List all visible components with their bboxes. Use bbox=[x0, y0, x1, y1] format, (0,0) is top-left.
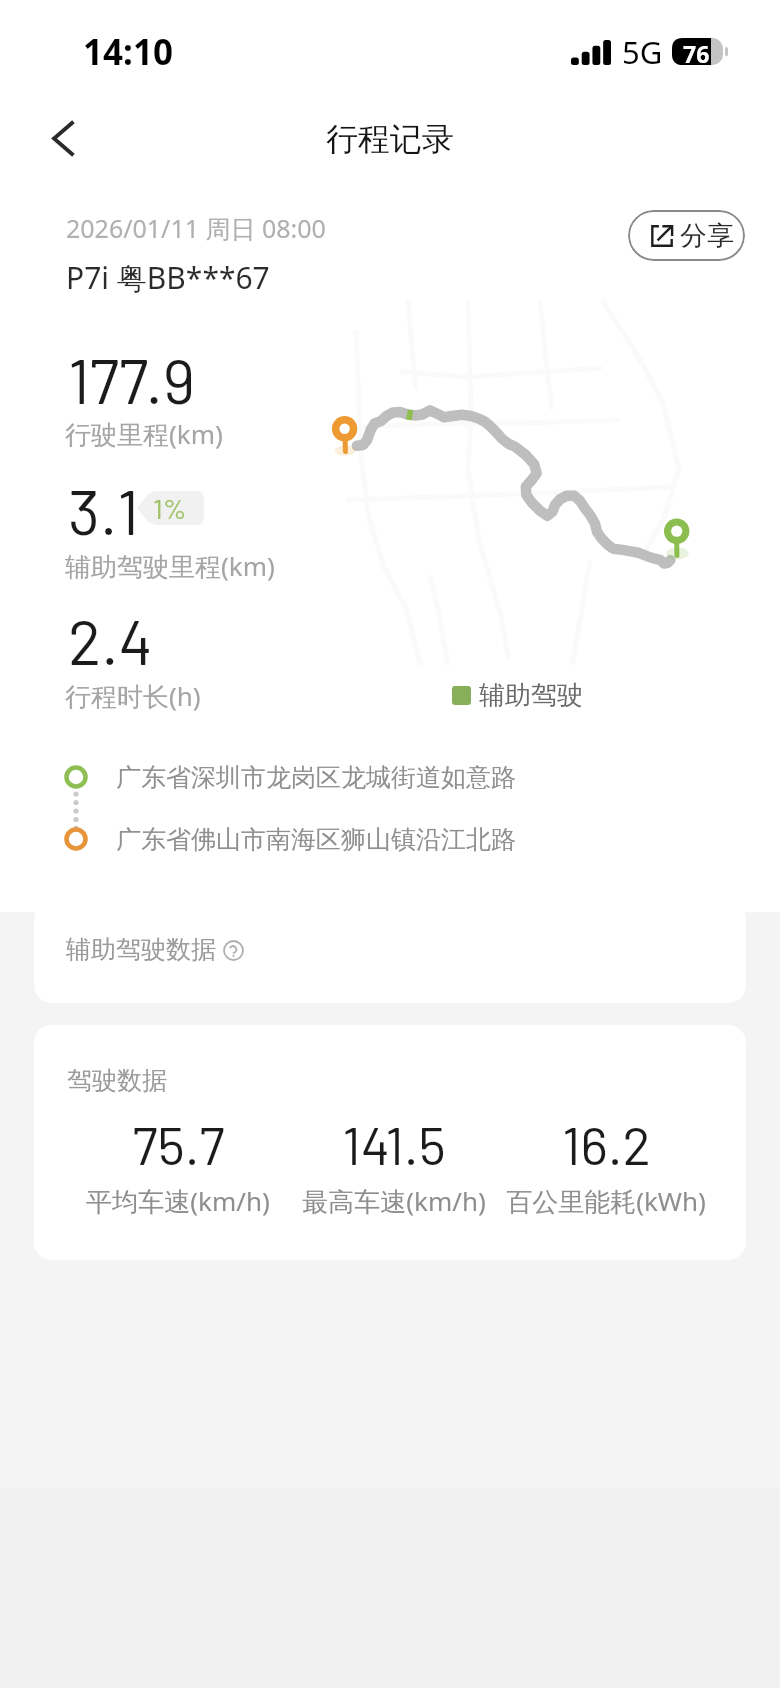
staticText: 广东省深圳市龙岗区龙城街道如意路 bbox=[116, 762, 516, 793]
staticText: 辅助驾驶里程(km) bbox=[65, 548, 275, 584]
staticText: 1% bbox=[153, 491, 187, 525]
staticText: 141.5 bbox=[342, 1112, 446, 1176]
staticText: 行程时长(h) bbox=[65, 678, 201, 714]
button[interactable]: Back bbox=[30, 110, 96, 168]
button[interactable]: 驾驶数据 bbox=[34, 1025, 746, 1260]
staticText: 14:10 bbox=[83, 28, 173, 76]
staticText: 广东省佛山市南海区狮山镇沿江北路 bbox=[116, 824, 516, 855]
staticText: 2.4 bbox=[68, 603, 153, 677]
button[interactable]: 辅助驾驶数据 bbox=[34, 901, 746, 1003]
staticText: 5G bbox=[622, 31, 663, 73]
staticText: 2026/01/11 周日 08:00 bbox=[66, 211, 326, 245]
staticText: 16.2 bbox=[562, 1112, 651, 1176]
staticText: 辅助驾驶 bbox=[479, 679, 583, 712]
staticText: 平均车速(km/h) bbox=[86, 1183, 270, 1219]
button[interactable]: 分享 bbox=[628, 210, 745, 261]
staticText: 辅助驾驶数据 bbox=[66, 934, 216, 965]
staticText: 3.1 bbox=[68, 473, 139, 547]
staticText: 75.7 bbox=[132, 1112, 225, 1176]
staticText: 177.9 bbox=[68, 342, 196, 416]
staticText: P7i 粤BB***67 bbox=[66, 257, 270, 298]
staticText: 最高车速(km/h) bbox=[302, 1183, 486, 1219]
staticText: 驾驶数据 bbox=[67, 1065, 167, 1096]
staticText: 分享 bbox=[680, 219, 734, 253]
staticText: 行驶里程(km) bbox=[65, 416, 223, 452]
staticText: 76 bbox=[683, 38, 710, 65]
staticText: 行程记录 bbox=[0, 119, 780, 159]
staticText: 百公里能耗(kWh) bbox=[506, 1183, 706, 1219]
